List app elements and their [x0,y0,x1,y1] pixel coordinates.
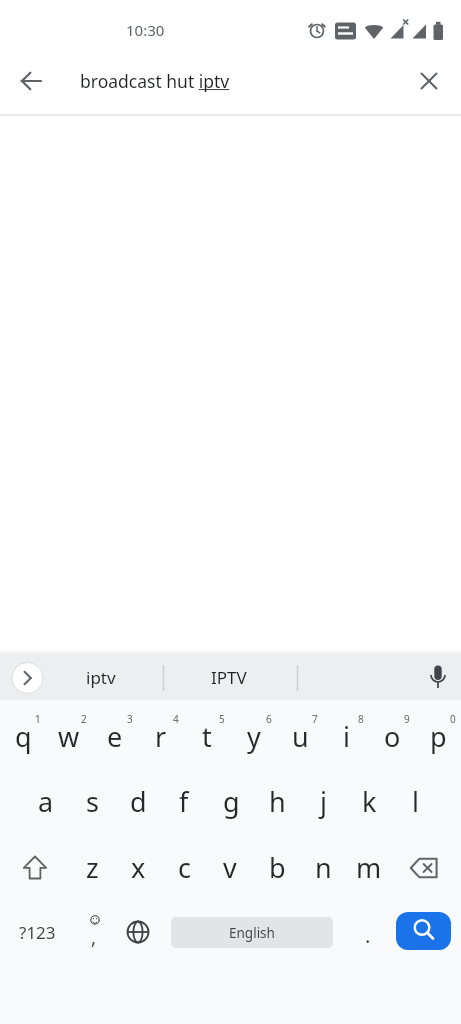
button[interactable]: q [0,708,46,764]
button[interactable]: y [231,708,277,764]
staticText: a [38,783,54,820]
staticText: z [86,849,99,886]
button[interactable]: v [207,839,253,895]
button[interactable]: c [161,839,207,895]
button[interactable]: d [115,773,161,829]
staticText: j [320,783,327,820]
button[interactable]: IPTV [169,655,289,699]
staticText: iptv [86,666,116,689]
button[interactable]: e [92,708,138,764]
button[interactable]: k [346,773,392,829]
staticText: 5 [219,712,225,726]
staticText: c [178,849,191,886]
staticText: l [412,783,419,820]
button[interactable]: broadcast hut iptv [62,58,402,104]
staticText: v [223,849,237,886]
staticText: k [362,783,377,820]
staticText: g [223,783,240,820]
staticText: d [130,783,147,820]
staticText: o [384,718,401,755]
button[interactable]: j [300,773,346,829]
staticText: 1 [35,712,41,726]
button[interactable]: iptv [46,655,156,699]
button[interactable]: r [138,708,184,764]
staticText: q [15,718,32,755]
button[interactable]: i [323,708,369,764]
button[interactable]: w [46,708,92,764]
staticText: h [269,783,286,820]
staticText: IPTV [211,666,247,689]
button[interactable]: l [392,773,438,829]
staticText: e [107,718,123,755]
staticText: 9 [404,712,410,726]
button[interactable]: ?123 [8,908,66,956]
button[interactable]: x [115,839,161,895]
staticText: English [229,924,275,942]
button[interactable] [118,908,158,956]
staticText: r [155,718,167,755]
staticText: 2 [81,712,87,726]
staticText: 8 [358,712,364,726]
staticText: m [356,849,382,886]
button[interactable]: s [69,773,115,829]
staticText: w [58,718,80,755]
button[interactable] [396,912,451,950]
staticText: 4 [173,712,179,726]
button[interactable]: , [79,917,109,957]
staticText: broadcast hut iptv [80,69,230,93]
button[interactable]: h [254,773,300,829]
staticText: s [86,783,99,820]
button[interactable] [420,660,456,696]
button[interactable]: a [23,773,69,829]
staticText: f [179,783,189,820]
button[interactable] [8,58,54,104]
staticText: b [269,849,286,886]
staticText: 6 [266,712,272,726]
button[interactable]: m [346,839,392,895]
button[interactable]: g [208,773,254,829]
staticText: ?123 [19,921,56,944]
button[interactable]: p [415,708,461,764]
staticText: . [365,922,371,949]
button[interactable]: . [350,911,386,959]
staticText: i [343,718,350,755]
staticText: 0 [450,712,456,726]
staticText: u [292,718,309,755]
button[interactable] [406,58,452,104]
staticText: n [315,849,332,886]
staticText: 7 [312,712,318,726]
button[interactable]: n [300,839,346,895]
button[interactable] [6,840,64,896]
staticText: p [430,718,447,755]
button[interactable]: English [171,917,333,948]
staticText: 3 [127,712,133,726]
button[interactable]: f [161,773,207,829]
button[interactable]: t [184,708,230,764]
button[interactable]: b [254,839,300,895]
staticText: y [247,718,261,755]
button[interactable]: u [277,708,323,764]
staticText: x [131,849,146,886]
button[interactable] [397,840,455,896]
staticText: 10:30 [126,20,165,40]
staticText: t [202,718,212,755]
button[interactable]: z [69,839,115,895]
button[interactable]: o [369,708,415,764]
staticText: , [91,924,97,950]
button[interactable] [12,662,44,694]
